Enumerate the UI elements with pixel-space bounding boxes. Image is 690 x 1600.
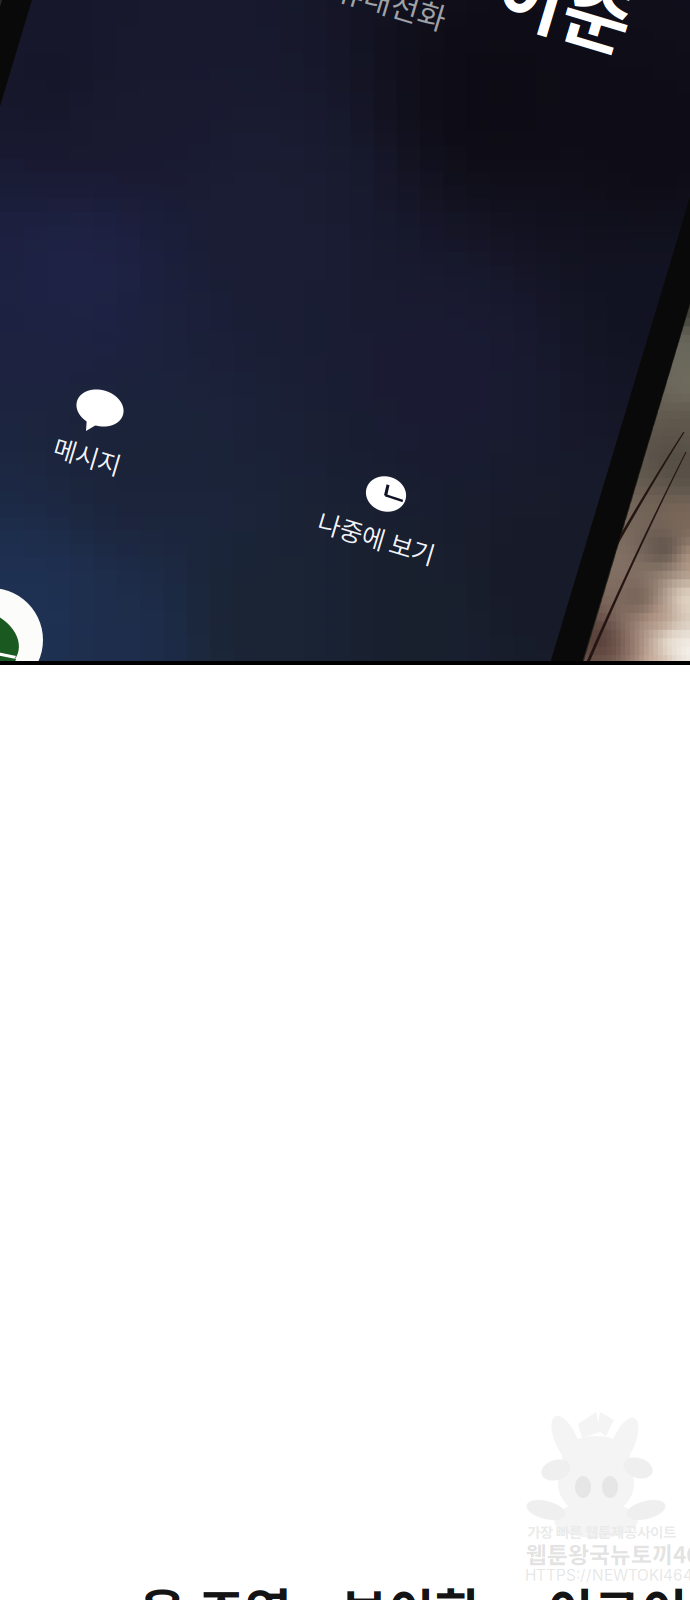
staticText: 메시지: [53, 437, 122, 474]
staticText: 응 조엽: [139, 1572, 292, 1600]
button[interactable]: 나중에 보기: [0, 0, 690, 663]
staticText: 가장 빠른 웹툰제공사이트: [527, 1521, 676, 1542]
staticText: 이그이그: [547, 1572, 690, 1600]
staticText: 보이한: [341, 1572, 482, 1600]
button[interactable]: Answer call: [0, 0, 690, 663]
button[interactable]: 메시지: [0, 0, 690, 663]
button[interactable]: 휴대전화: [0, 0, 112, 44]
staticText: 휴대전화: [336, 0, 448, 24]
staticText: 나중에 보기: [316, 519, 437, 556]
staticText: 웹툰왕국뉴토끼464: [526, 1537, 690, 1570]
staticText: 이준: [497, 0, 635, 56]
staticText: HTTPS://NEWTOKI464.COM: [525, 1566, 690, 1585]
